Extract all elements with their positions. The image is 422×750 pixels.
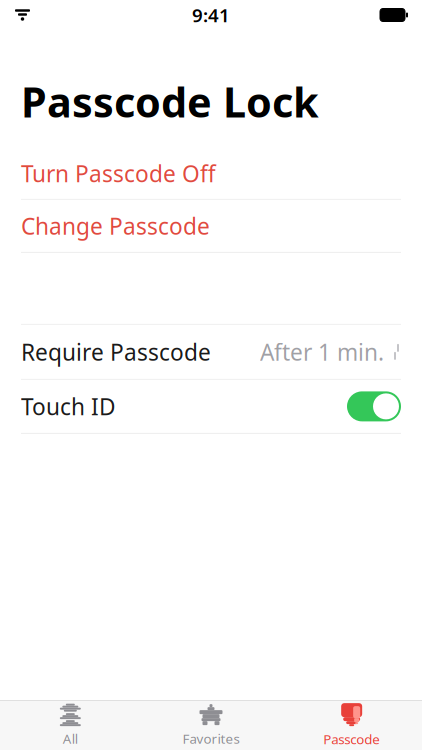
staticText: Require Passcode: [21, 337, 211, 367]
staticText: Favorites: [182, 730, 239, 747]
staticText: Turn Passcode Off: [21, 158, 216, 188]
button[interactable]: Passcode: [281, 697, 422, 750]
staticText: Touch ID: [21, 391, 116, 421]
staticText: Change Passcode: [21, 211, 210, 241]
staticText: After 1 min.: [260, 337, 384, 367]
button[interactable]: Favorites: [141, 698, 281, 750]
button[interactable]: All: [0, 698, 141, 750]
button[interactable]: Turn Passcode Off: [0, 148, 422, 199]
staticText: 9:41: [192, 3, 230, 27]
button[interactable]: Touch ID: [347, 391, 401, 421]
staticText: All: [63, 730, 78, 747]
button[interactable]: Change Passcode: [0, 200, 422, 252]
staticText: Passcode: [323, 730, 380, 748]
staticText: Passcode Lock: [21, 74, 319, 129]
button[interactable]: Require Passcode: [0, 325, 422, 379]
